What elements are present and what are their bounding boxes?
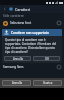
button[interactable]: OK: [33, 56, 60, 61]
button[interactable]: Seleziona font: [0, 19, 64, 27]
button[interactable]: Samsung Sans: [0, 64, 64, 70]
button[interactable]: Annulla: [4, 56, 31, 61]
staticText: Caratteri: [15, 7, 31, 12]
button[interactable]: Indietro: [2, 6, 8, 12]
staticText: Annulla: [12, 81, 22, 85]
staticText: Carattere non supportato: [11, 31, 49, 35]
staticText: Annulla: [13, 57, 23, 61]
staticText: OK: [45, 57, 49, 61]
staticText: Scarica: [43, 81, 53, 85]
staticText: Questo tipo di carattere non è supportat…: [5, 38, 59, 54]
button[interactable]: Annulla: [2, 80, 31, 86]
staticText: Stile carattere: [3, 14, 24, 18]
staticText: Samsung Sans: [3, 65, 24, 69]
staticText: Seleziona font: [10, 21, 32, 25]
button[interactable]: Scarica: [33, 80, 62, 86]
